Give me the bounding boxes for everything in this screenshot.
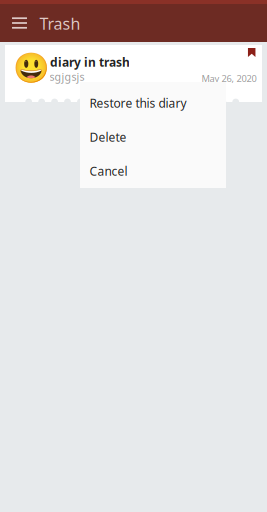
staticText: Cancel <box>89 163 127 179</box>
staticText: May 26, 2020 <box>201 72 256 85</box>
button[interactable]: Open navigation menu <box>2 4 36 42</box>
staticText: Trash <box>39 13 80 34</box>
staticText: sgjgsjs <box>49 69 84 84</box>
staticText: 😃 <box>12 51 49 85</box>
staticText: diary in trash <box>50 54 130 70</box>
staticText: Delete <box>89 129 126 145</box>
button[interactable]: Cancel <box>80 154 226 188</box>
button[interactable]: Restore this diary <box>80 86 226 120</box>
button[interactable]: Delete <box>80 120 226 154</box>
staticText: Restore this diary <box>89 95 186 111</box>
button[interactable]: 😃 <box>5 45 262 102</box>
